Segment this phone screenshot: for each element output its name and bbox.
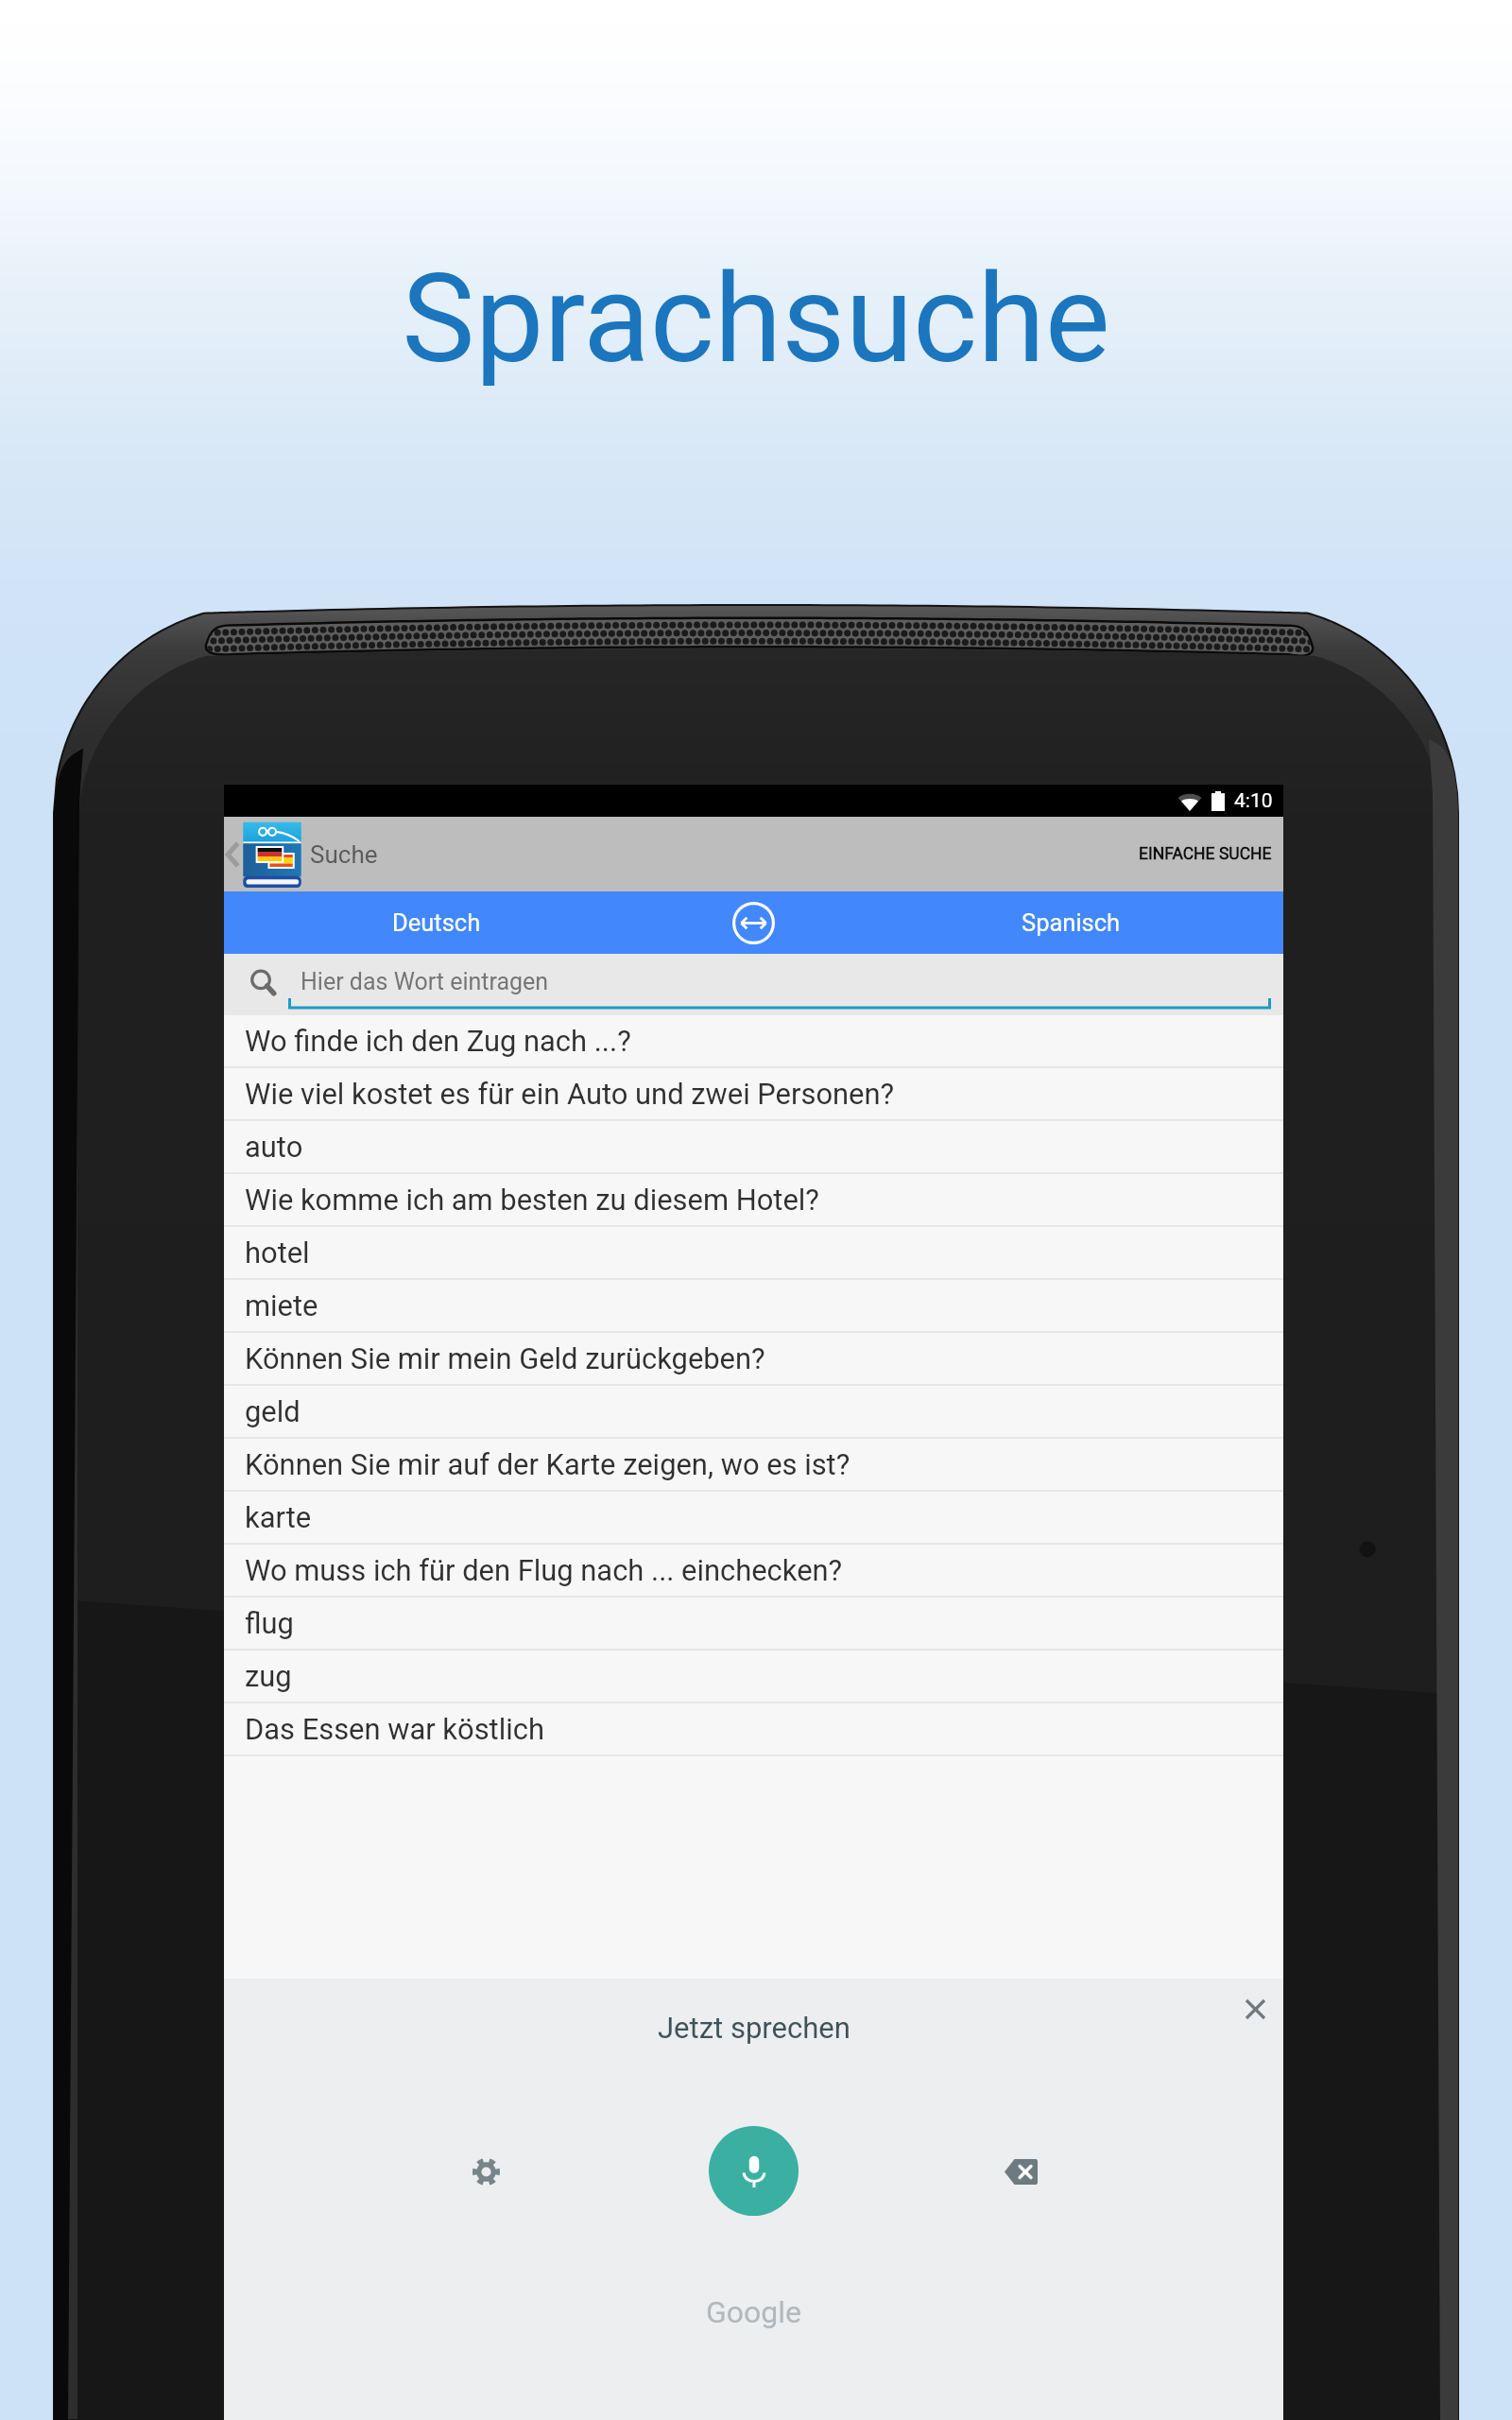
button[interactable]: Deutsch (224, 891, 649, 954)
button[interactable]: karte (224, 1492, 1283, 1545)
button[interactable]: geld (224, 1386, 1283, 1439)
staticText: Google (706, 2294, 802, 2330)
staticText: Hier das Wort eintragen (301, 968, 549, 995)
staticText: Jetzt sprechen (658, 2011, 850, 2045)
button[interactable]: auto (224, 1121, 1283, 1174)
staticText: Können Sie mir auf der Karte zeigen, wo … (245, 1447, 850, 1481)
button[interactable]: hotel (224, 1227, 1283, 1280)
staticText: flug (245, 1606, 294, 1640)
button[interactable]: EINFACHE SUCHE (1127, 821, 1283, 887)
staticText: EINFACHE SUCHE (1139, 844, 1272, 864)
staticText: Wo muss ich für den Flug nach ... einche… (245, 1553, 843, 1587)
button[interactable]: Können Sie mir auf der Karte zeigen, wo … (224, 1439, 1283, 1492)
button[interactable]: Wie komme ich am besten zu diesem Hotel? (224, 1174, 1283, 1227)
button[interactable]: Spanisch (858, 891, 1283, 954)
button[interactable]: Settings (462, 2148, 509, 2195)
staticText: Können Sie mir mein Geld zurückgeben? (245, 1341, 765, 1375)
button[interactable]: Close (1230, 1984, 1280, 2033)
button[interactable]: Das Essen war köstlich (224, 1703, 1283, 1756)
button[interactable]: zug (224, 1651, 1283, 1703)
button[interactable]: miete (224, 1280, 1283, 1333)
staticText: Das Essen war köstlich (245, 1712, 544, 1746)
staticText: Wie viel kostet es für ein Auto und zwei… (245, 1077, 895, 1111)
button[interactable]: Wo finde ich den Zug nach ...? (224, 1015, 1283, 1068)
staticText: zug (245, 1659, 292, 1693)
button[interactable]: Swap languages (722, 891, 784, 954)
staticText: auto (245, 1130, 303, 1164)
button[interactable]: Wie viel kostet es für ein Auto und zwei… (224, 1068, 1283, 1121)
staticText: karte (245, 1500, 312, 1534)
button[interactable]: Können Sie mir mein Geld zurückgeben? (224, 1333, 1283, 1386)
button[interactable]: Back (224, 817, 242, 891)
staticText: Wie komme ich am besten zu diesem Hotel? (245, 1183, 819, 1217)
staticText: hotel (245, 1236, 310, 1270)
button[interactable]: Start voice input (709, 2126, 799, 2216)
staticText: Spanisch (1022, 908, 1121, 937)
staticText: 4:10 (1234, 789, 1273, 813)
button[interactable]: Backspace (997, 2148, 1044, 2195)
staticText: miete (245, 1288, 318, 1322)
button[interactable]: Hier das Wort eintragen (224, 954, 1283, 1015)
button[interactable]: flug (224, 1598, 1283, 1651)
staticText: geld (245, 1394, 301, 1428)
staticText: Sprachsuche (0, 247, 1512, 390)
staticText: Wo finde ich den Zug nach ...? (245, 1024, 631, 1058)
button[interactable]: Wo muss ich für den Flug nach ... einche… (224, 1545, 1283, 1598)
staticText: Suche (310, 840, 378, 869)
staticText: Deutsch (392, 908, 481, 937)
